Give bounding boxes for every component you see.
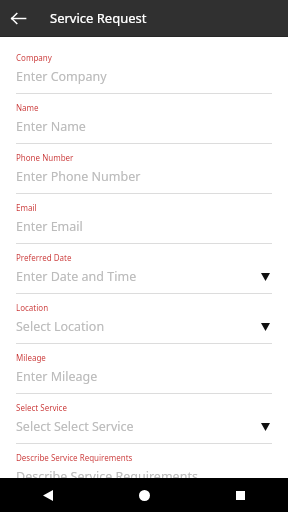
button[interactable]: Select Service — [16, 394, 272, 444]
staticText: Describe Service Requirements — [16, 452, 133, 463]
staticText: Mileage — [16, 352, 46, 363]
staticText: Describe Service Requirements — [16, 468, 272, 478]
staticText: Select Select Service — [16, 418, 261, 435]
staticText: Name — [16, 102, 39, 113]
button[interactable]: Name — [16, 94, 272, 144]
button[interactable]: Phone Number — [16, 144, 272, 194]
staticText: Company — [16, 52, 52, 63]
staticText: Enter Phone Number — [16, 168, 272, 185]
staticText: Enter Date and Time — [16, 268, 261, 285]
button[interactable]: Mileage — [16, 344, 272, 394]
staticText: Service Request — [50, 9, 147, 27]
staticText: Phone Number — [16, 152, 74, 163]
button[interactable]: Email — [16, 194, 272, 244]
staticText: Select Location — [16, 318, 261, 335]
button[interactable]: Company — [16, 44, 272, 94]
staticText: Enter Mileage — [16, 368, 272, 385]
staticText: Preferred Date — [16, 252, 72, 263]
button[interactable]: Preferred Date — [16, 244, 272, 294]
button[interactable]: Recent apps — [192, 478, 288, 512]
button[interactable]: Back — [0, 478, 96, 512]
button[interactable]: Describe Service Requirements — [16, 444, 272, 478]
staticText: Enter Name — [16, 118, 272, 135]
button[interactable]: Back — [0, 0, 36, 36]
staticText: Location — [16, 302, 49, 313]
staticText: Enter Company — [16, 68, 272, 85]
button[interactable]: Location — [16, 294, 272, 344]
button[interactable]: Home — [96, 478, 192, 512]
staticText: Enter Email — [16, 218, 272, 235]
staticText: Email — [16, 202, 37, 213]
staticText: Select Service — [16, 402, 67, 413]
